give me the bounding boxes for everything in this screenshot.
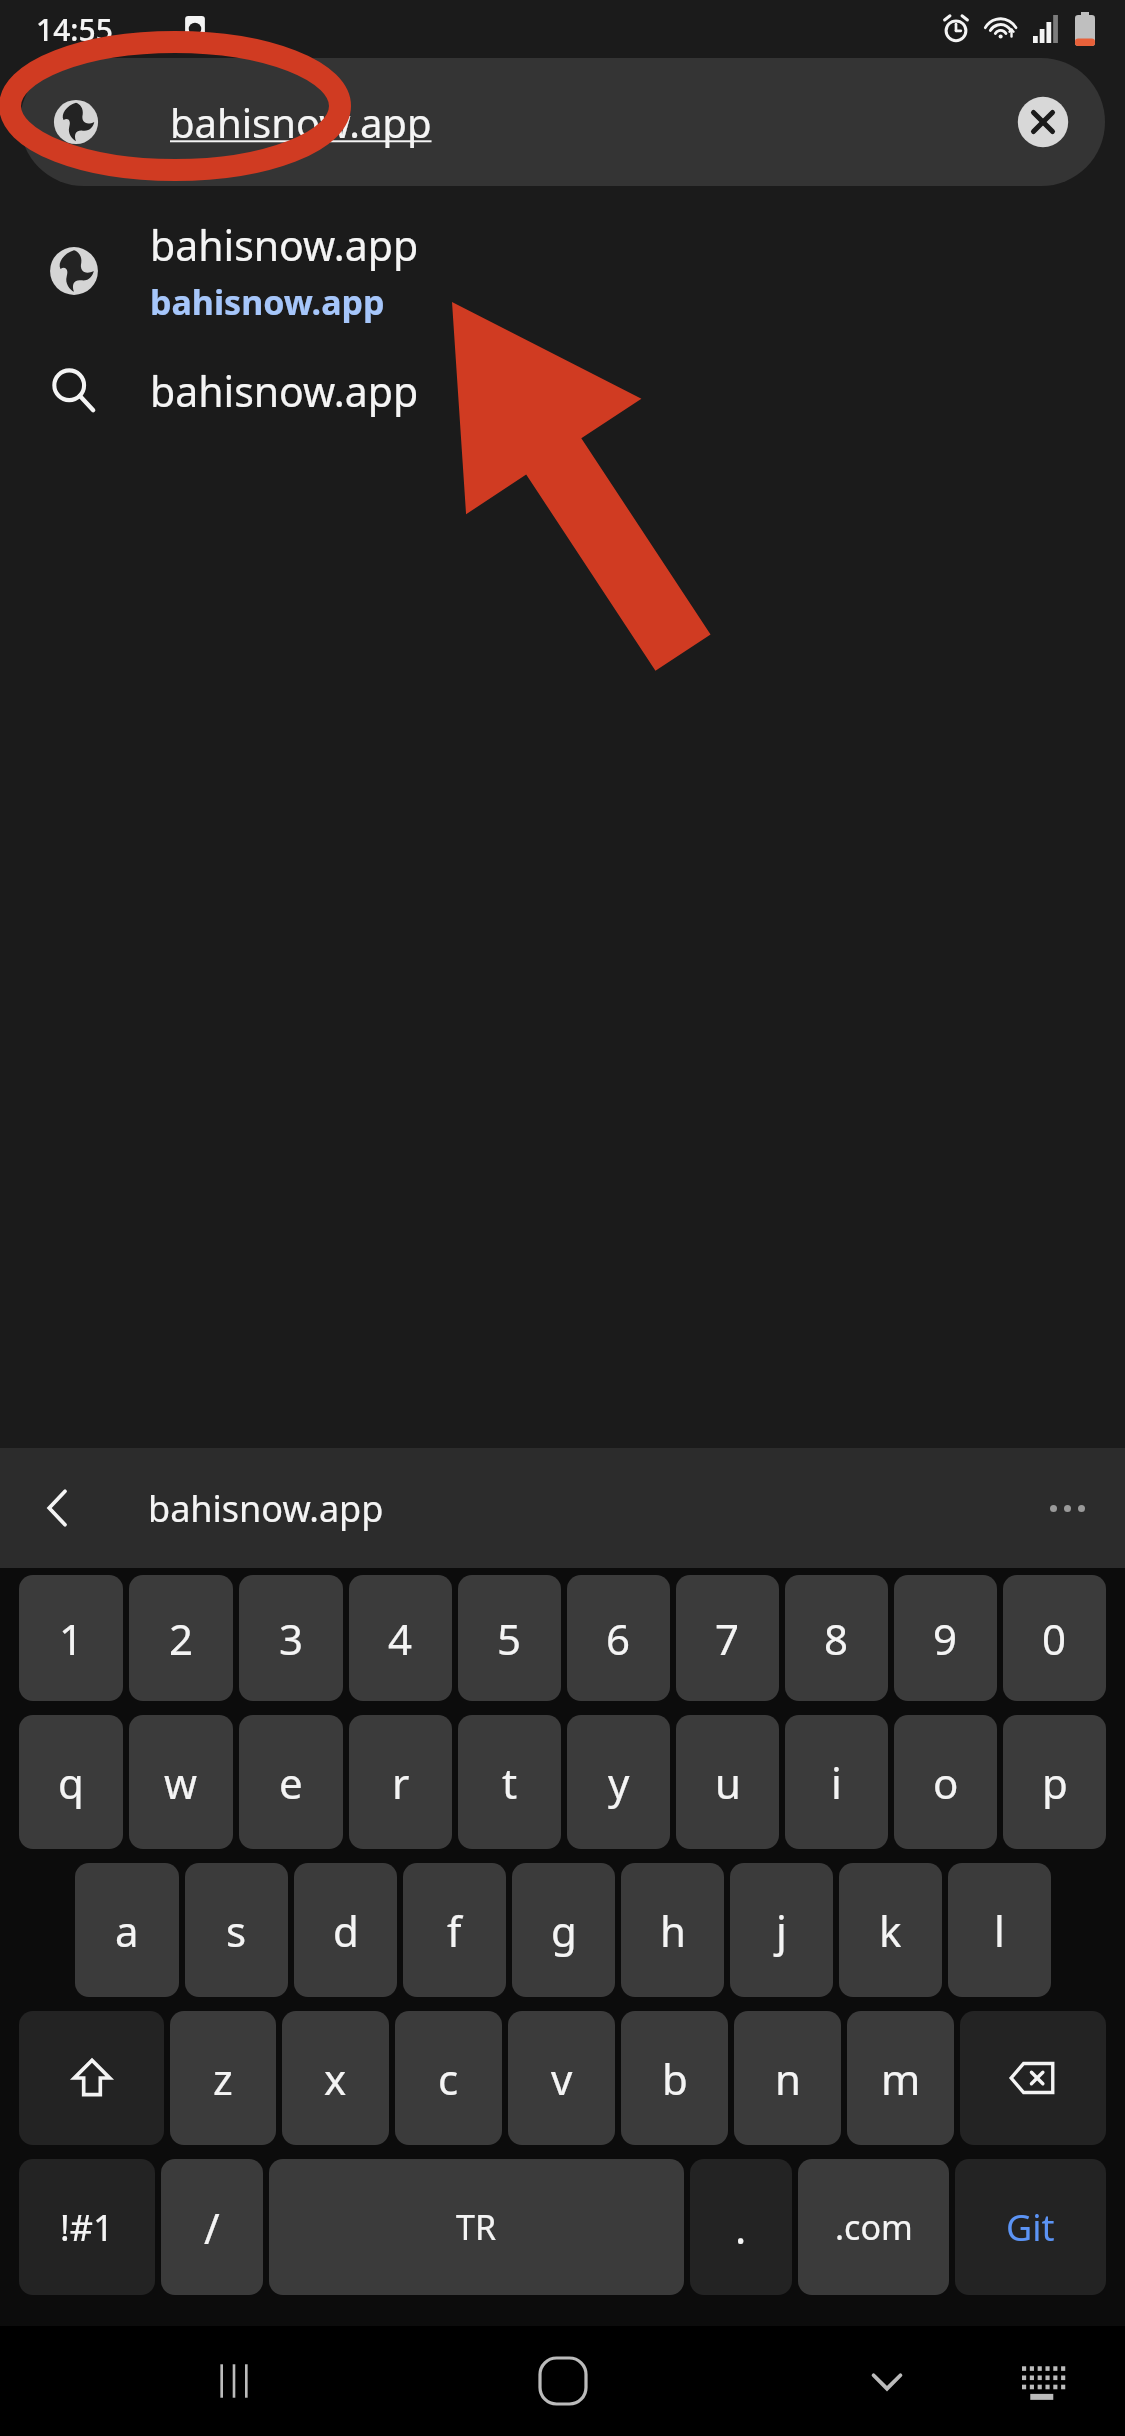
button[interactable]: n <box>734 2011 841 2145</box>
button[interactable]: 2 <box>129 1575 233 1701</box>
button[interactable]: / <box>161 2159 263 2295</box>
button[interactable]: q <box>19 1715 123 1849</box>
staticText: s <box>226 1902 247 1959</box>
button[interactable]: k <box>839 1863 942 1997</box>
staticText: j <box>776 1902 787 1959</box>
staticText: . <box>735 2199 747 2256</box>
button[interactable]: !#1 <box>19 2159 155 2295</box>
button[interactable]: Backspace <box>960 2011 1106 2145</box>
button[interactable]: 3 <box>239 1575 343 1701</box>
staticText: f <box>447 1902 462 1959</box>
staticText: !#1 <box>60 2203 114 2252</box>
staticText: e <box>279 1754 303 1811</box>
button[interactable]: bahisnow.app <box>0 206 1125 336</box>
button[interactable]: y <box>567 1715 670 1849</box>
button[interactable]: s <box>185 1863 288 1997</box>
button[interactable]: g <box>512 1863 615 1997</box>
button[interactable]: 5 <box>458 1575 561 1701</box>
staticText: a <box>115 1902 139 1959</box>
staticText: bahisnow.app <box>150 279 385 325</box>
button[interactable]: 9 <box>894 1575 997 1701</box>
button[interactable]: j <box>730 1863 833 1997</box>
button[interactable]: m <box>847 2011 954 2145</box>
button[interactable]: . <box>690 2159 792 2295</box>
button[interactable]: Site <box>20 58 1105 186</box>
staticText: g <box>551 1902 577 1959</box>
staticText: b <box>662 2050 688 2107</box>
button[interactable]: l <box>948 1863 1051 1997</box>
button[interactable]: Clear <box>1015 94 1071 150</box>
button[interactable]: Shift <box>19 2011 164 2145</box>
staticText: bahisnow.app <box>170 95 432 149</box>
button[interactable]: w <box>129 1715 233 1849</box>
staticText: v <box>551 2050 573 2107</box>
staticText: 4 <box>388 1610 413 1667</box>
button[interactable]: bahisnow.app <box>0 336 1125 446</box>
staticText: 5 <box>497 1610 522 1667</box>
button[interactable]: Change keyboard <box>1007 2343 1083 2419</box>
button[interactable]: 1 <box>19 1575 123 1701</box>
other: Site <box>52 98 100 146</box>
staticText: / <box>204 2199 220 2256</box>
button[interactable]: r <box>349 1715 452 1849</box>
button[interactable]: a <box>75 1863 179 1997</box>
staticText: 6 <box>606 1610 631 1667</box>
staticText: o <box>933 1754 959 1811</box>
button[interactable]: u <box>676 1715 779 1849</box>
button[interactable]: Hide keyboard <box>849 2343 925 2419</box>
staticText: Git <box>1006 2203 1055 2252</box>
button[interactable]: c <box>395 2011 502 2145</box>
staticText: 1 <box>59 1610 84 1667</box>
staticText: p <box>1042 1754 1068 1811</box>
staticText: h <box>660 1902 686 1959</box>
staticText: u <box>715 1754 741 1811</box>
staticText: 14:55 <box>36 9 113 50</box>
staticText: i <box>831 1754 842 1811</box>
button[interactable]: o <box>894 1715 997 1849</box>
staticText: y <box>608 1754 630 1811</box>
button[interactable]: p <box>1003 1715 1106 1849</box>
button[interactable]: d <box>294 1863 397 1997</box>
button[interactable]: 8 <box>785 1575 888 1701</box>
button[interactable]: Back <box>26 1476 90 1540</box>
staticText: w <box>164 1754 198 1811</box>
staticText: t <box>502 1754 518 1811</box>
staticText: k <box>879 1902 902 1959</box>
button[interactable]: v <box>508 2011 615 2145</box>
staticText: x <box>324 2050 347 2107</box>
button[interactable]: z <box>170 2011 276 2145</box>
button[interactable]: Recents <box>196 2343 272 2419</box>
button[interactable]: .com <box>798 2159 949 2295</box>
button[interactable]: f <box>403 1863 506 1997</box>
button[interactable]: Home <box>523 2341 603 2421</box>
button[interactable]: e <box>239 1715 343 1849</box>
button[interactable]: t <box>458 1715 561 1849</box>
staticText: 2 <box>169 1610 194 1667</box>
button[interactable]: h <box>621 1863 724 1997</box>
staticText: bahisnow.app <box>150 363 419 419</box>
staticText: 0 <box>1042 1610 1067 1667</box>
button[interactable]: x <box>282 2011 389 2145</box>
button[interactable]: More options <box>1035 1476 1099 1540</box>
staticText: d <box>333 1902 359 1959</box>
staticText: z <box>213 2050 233 2107</box>
staticText: c <box>438 2050 459 2107</box>
staticText: bahisnow.app <box>148 1484 384 1533</box>
staticText: r <box>392 1754 410 1811</box>
staticText: TR <box>456 2204 497 2250</box>
staticText: 8 <box>824 1610 849 1667</box>
button[interactable]: b <box>621 2011 728 2145</box>
button[interactable]: i <box>785 1715 888 1849</box>
button[interactable]: Git <box>955 2159 1106 2295</box>
staticText: n <box>775 2050 801 2107</box>
button[interactable]: 4 <box>349 1575 452 1701</box>
button[interactable]: 7 <box>676 1575 779 1701</box>
button[interactable]: TR <box>269 2159 684 2295</box>
staticText: bahisnow.app <box>150 217 419 273</box>
button[interactable]: 0 <box>1003 1575 1106 1701</box>
staticText: 3 <box>279 1610 304 1667</box>
staticText: 7 <box>715 1610 740 1667</box>
staticText: 9 <box>933 1610 958 1667</box>
button[interactable]: 6 <box>567 1575 670 1701</box>
staticText: m <box>881 2050 921 2107</box>
